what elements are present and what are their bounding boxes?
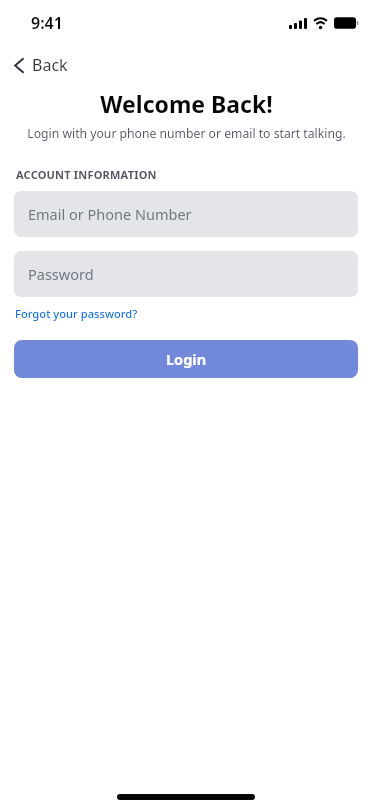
staticText: Forgot your password? — [15, 306, 138, 321]
staticText: Password — [28, 264, 94, 284]
staticText: Email or Phone Number — [28, 204, 192, 224]
staticText: 9:41 — [31, 12, 63, 34]
staticText: ACCOUNT INFORMATION — [16, 167, 157, 182]
button[interactable]: Back — [14, 54, 68, 76]
button[interactable]: Password — [14, 251, 358, 297]
button[interactable]: Forgot your password? — [15, 305, 138, 322]
staticText: Back — [32, 54, 68, 76]
button[interactable]: Email or Phone Number — [14, 191, 358, 237]
staticText: Welcome Back! — [100, 88, 273, 115]
button[interactable]: Login — [14, 340, 358, 378]
staticText: Login — [166, 349, 207, 369]
staticText: Login with your phone number or email to… — [27, 125, 346, 142]
